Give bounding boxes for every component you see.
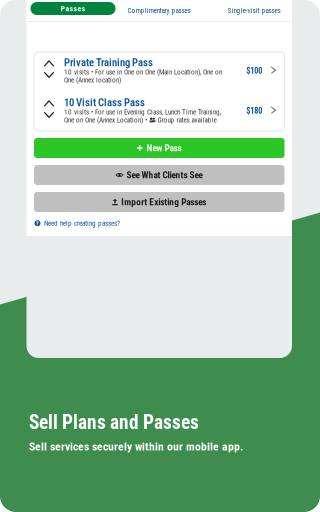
button[interactable]: Move 10 Visit Class Pass down (41, 109, 57, 120)
staticText: Complimentary passes (127, 6, 190, 15)
button[interactable]: Complimentary passes (121, 2, 196, 19)
staticText: 10 visits • For use in One on One (Main … (64, 68, 222, 76)
staticText: One (Annex location) (64, 76, 121, 84)
staticText: 10 Visit Class Pass (64, 96, 145, 109)
staticText: One on One (Annex Location) • (64, 116, 147, 124)
staticText: $100 (246, 66, 262, 76)
button[interactable]: Move Private Training Pass down (41, 69, 57, 80)
staticText: 10 visits • For use in Evening Class, Lu… (64, 108, 221, 116)
button[interactable]: Open 10 Visit Class Pass (262, 105, 284, 115)
staticText: See What Clients See (126, 169, 202, 180)
button[interactable]: ? (26, 212, 292, 235)
staticText: $180 (246, 106, 262, 116)
staticText: Need help creating passes? (44, 219, 120, 227)
button[interactable]: Move Private Training Pass up (41, 58, 57, 69)
staticText: ? (36, 220, 39, 227)
staticText: New Pass (146, 142, 181, 153)
button[interactable]: New Pass (34, 138, 284, 158)
staticText: Passes (60, 4, 85, 13)
button[interactable]: Open Private Training Pass (262, 65, 284, 75)
button[interactable]: Move 10 Visit Class Pass up (41, 98, 57, 109)
button[interactable]: See What Clients See (34, 165, 284, 185)
button[interactable]: Import Existing Passes (34, 192, 284, 212)
staticText: Sell Plans and Passes (29, 411, 199, 434)
staticText: Import Existing Passes (121, 196, 206, 207)
button[interactable]: Passes (30, 2, 115, 15)
staticText: Private Training Pass (64, 56, 153, 69)
staticText: Sell services securely within our mobile… (29, 440, 243, 453)
staticText: Single-visit passes (227, 6, 280, 15)
staticText: Group rates available (157, 116, 216, 124)
button[interactable]: Single-visit passes (221, 2, 286, 19)
